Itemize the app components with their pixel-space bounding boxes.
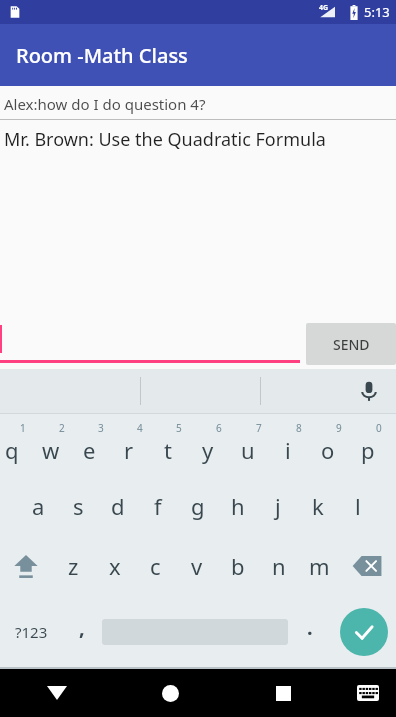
staticText: 4G xyxy=(319,3,329,13)
staticText: b xyxy=(231,551,245,581)
staticText: Mr. Brown: Use the Quadratic Formula xyxy=(4,127,326,152)
staticText: t xyxy=(164,435,172,465)
button[interactable] xyxy=(0,321,300,369)
staticText: j xyxy=(275,491,281,521)
button[interactable]: 8 xyxy=(268,414,308,476)
staticText: q xyxy=(5,435,19,465)
button[interactable]: ?123 xyxy=(0,596,62,667)
button[interactable]: x xyxy=(94,536,135,596)
staticText: 9 xyxy=(336,421,342,435)
button[interactable]: Shift xyxy=(0,536,52,596)
staticText: v xyxy=(191,551,203,581)
button[interactable]: 0 xyxy=(348,414,388,476)
staticText: d xyxy=(111,491,125,521)
button[interactable]: 3 xyxy=(70,414,109,476)
staticText: w xyxy=(42,435,60,465)
staticText: 1 xyxy=(20,421,26,435)
staticText: 7 xyxy=(256,421,262,435)
staticText: o xyxy=(321,435,335,465)
staticText: y xyxy=(202,435,214,465)
staticText: 2 xyxy=(59,421,65,435)
staticText: 5 xyxy=(176,421,182,435)
button[interactable]: Recents xyxy=(227,669,340,717)
staticText: x xyxy=(109,551,121,581)
button[interactable]: a xyxy=(18,476,58,536)
button[interactable]: 9 xyxy=(308,414,348,476)
button[interactable]: c xyxy=(135,536,176,596)
button[interactable]: n xyxy=(258,536,299,596)
staticText: ?123 xyxy=(15,622,48,642)
button[interactable]: Voice input xyxy=(356,378,382,404)
button[interactable]: h xyxy=(218,476,258,536)
staticText: 5:13 xyxy=(364,3,390,21)
staticText: s xyxy=(73,491,84,521)
button[interactable]: Home xyxy=(114,669,227,717)
button[interactable]: Back xyxy=(0,669,114,717)
staticText: c xyxy=(150,551,161,581)
button[interactable]: s xyxy=(58,476,98,536)
button[interactable]: 1 xyxy=(0,414,31,476)
staticText: 0 xyxy=(376,421,382,435)
button[interactable]: j xyxy=(258,476,298,536)
staticText: e xyxy=(83,435,96,465)
button[interactable]: b xyxy=(217,536,258,596)
staticText: i xyxy=(285,435,291,465)
button[interactable]: . xyxy=(288,596,332,667)
staticText: r xyxy=(124,435,134,465)
button[interactable]: Switch keyboard xyxy=(340,669,396,717)
button[interactable]: Backspace xyxy=(340,536,396,596)
staticText: h xyxy=(231,491,245,521)
staticText: 6 xyxy=(216,421,222,435)
button[interactable]: g xyxy=(178,476,218,536)
button[interactable]: 7 xyxy=(228,414,268,476)
button[interactable]: , xyxy=(62,596,102,667)
staticText: SEND xyxy=(333,335,370,354)
button[interactable]: d xyxy=(98,476,138,536)
staticText: . xyxy=(307,614,313,641)
staticText: , xyxy=(79,614,85,641)
button[interactable]: 4 xyxy=(109,414,148,476)
staticText: Alex:how do I do question 4? xyxy=(4,94,206,114)
staticText: Room -Math Class xyxy=(16,42,188,69)
staticText: m xyxy=(309,551,330,581)
staticText: k xyxy=(312,491,324,521)
button[interactable]: 6 xyxy=(188,414,228,476)
button[interactable]: Room -Math Class xyxy=(0,24,396,86)
staticText: a xyxy=(32,491,45,521)
button[interactable]: z xyxy=(52,536,94,596)
staticText: 4 xyxy=(137,421,143,435)
staticText: n xyxy=(272,551,286,581)
staticText: l xyxy=(355,491,361,521)
button[interactable]: 5 xyxy=(148,414,188,476)
button[interactable]: Enter xyxy=(332,596,396,667)
staticText: g xyxy=(191,491,205,521)
button[interactable]: 2 xyxy=(31,414,70,476)
button[interactable]: k xyxy=(298,476,338,536)
button[interactable]: l xyxy=(338,476,378,536)
button[interactable]: f xyxy=(138,476,178,536)
button[interactable]: v xyxy=(176,536,217,596)
staticText: u xyxy=(241,435,255,465)
button[interactable]: m xyxy=(299,536,340,596)
staticText: f xyxy=(154,491,162,521)
button[interactable]: SEND xyxy=(306,323,396,365)
staticText: p xyxy=(361,435,375,465)
staticText: z xyxy=(68,551,79,581)
staticText: 8 xyxy=(296,421,302,435)
staticText: 3 xyxy=(98,421,104,435)
